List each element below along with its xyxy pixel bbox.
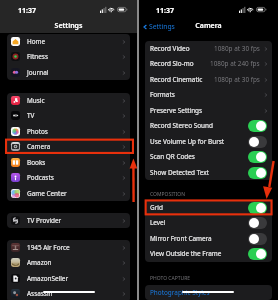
staticText: 11:37 (156, 6, 174, 16)
button[interactable]: Show Detected Text (145, 165, 272, 180)
staticText: Camera (27, 142, 51, 151)
button[interactable]: Photos (7, 124, 130, 139)
staticText: Scan QR Codes (150, 152, 195, 161)
staticText: Record Video (150, 44, 190, 53)
staticText: Formats (150, 90, 175, 99)
staticText: Assassin (27, 289, 53, 298)
staticText: Record Stereo Sound (150, 121, 213, 130)
button[interactable]: Record Cinematic (145, 72, 272, 87)
staticText: Grid (150, 203, 163, 212)
button[interactable]: Photographic Styles (145, 285, 272, 300)
staticText: Home (27, 37, 46, 46)
button[interactable]: Mirror Front Camera (145, 231, 272, 246)
staticText: Record Cinematic (150, 75, 203, 84)
staticText: 1080p at 240 fps (210, 59, 260, 68)
staticText: AmazonSeller (27, 274, 69, 283)
staticText: Camera (139, 21, 278, 31)
button[interactable]: Formats (145, 87, 272, 102)
staticText: Use Volume Up for Burst (150, 137, 225, 146)
staticText: Mirror Front Camera (150, 234, 212, 243)
staticText: TV (27, 111, 35, 120)
staticText: Record Slo-mo (150, 59, 194, 68)
button[interactable]: Fitness (7, 49, 130, 64)
staticText: Show Detected Text (150, 168, 209, 177)
staticText: Game Center (27, 189, 67, 198)
staticText: Settings (0, 21, 137, 31)
button[interactable]: Podcasts (7, 170, 130, 185)
button[interactable]: View Outside the Frame (145, 246, 272, 261)
staticText: Fitness (27, 52, 48, 61)
staticText: Podcasts (27, 173, 54, 182)
button[interactable]: Use Volume Up for Burst (145, 134, 272, 149)
button[interactable]: Assassin (7, 286, 130, 300)
staticText: 1080p at 30 fps (214, 44, 260, 53)
button[interactable]: 1945 Air Force (7, 240, 130, 255)
button[interactable]: Books (7, 155, 130, 170)
button[interactable]: AmazonSeller (7, 271, 130, 286)
button[interactable]: Journal (7, 65, 130, 80)
staticText: Amazon (27, 258, 52, 267)
staticText: TV Provider (27, 216, 62, 225)
button[interactable]: Game Center (7, 186, 130, 201)
button[interactable]: Level (145, 215, 272, 230)
staticText: 1080p at 30 fps (214, 75, 260, 84)
button[interactable]: TV Provider (7, 213, 130, 228)
button[interactable]: Grid (145, 200, 272, 215)
button[interactable]: Camera (7, 139, 130, 154)
button[interactable]: TV (7, 108, 130, 123)
staticText: Level (150, 218, 166, 227)
button[interactable]: Scan QR Codes (145, 149, 272, 164)
button[interactable]: Record Video (145, 41, 272, 56)
button[interactable]: Preserve Settings (145, 103, 272, 118)
staticText: Preserve Settings (150, 106, 203, 115)
button[interactable]: Record Stereo Sound (145, 118, 272, 133)
staticText: 1945 Air Force (27, 243, 70, 252)
staticText: Settings (149, 22, 175, 31)
staticText: Photographic Styles (150, 288, 210, 297)
button[interactable]: Record Slo-mo (145, 56, 272, 71)
staticText: Photos (27, 127, 48, 136)
button[interactable]: Home (7, 34, 130, 49)
staticText: PHOTO CAPTURE (150, 275, 191, 282)
staticText: Books (27, 158, 46, 167)
staticText: Music (27, 96, 45, 105)
button[interactable]: Settings (142, 22, 175, 31)
button[interactable]: Amazon (7, 255, 130, 270)
button[interactable]: Music (7, 93, 130, 108)
staticText: Journal (27, 68, 49, 77)
staticText: View Outside the Frame (150, 249, 222, 258)
staticText: 11:37 (18, 6, 36, 16)
staticText: COMPOSITION (150, 191, 186, 198)
